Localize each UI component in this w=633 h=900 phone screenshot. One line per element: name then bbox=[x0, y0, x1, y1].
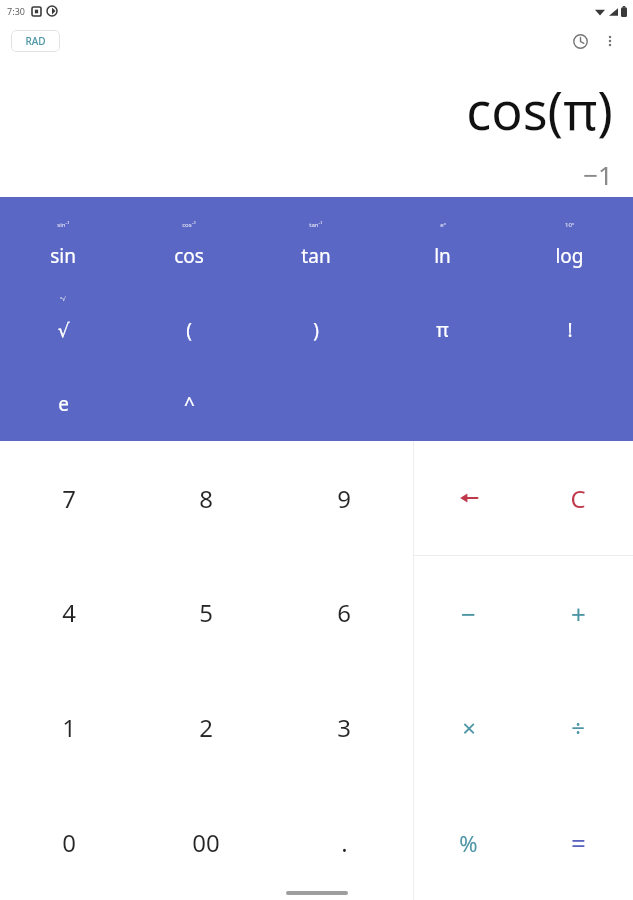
staticText: √ bbox=[57, 319, 70, 341]
button[interactable]: ÷ bbox=[523, 670, 633, 785]
staticText: π bbox=[436, 317, 449, 343]
staticText: 4 bbox=[62, 596, 76, 629]
button[interactable]: % bbox=[414, 785, 523, 900]
button[interactable]: eˣ bbox=[379, 221, 506, 277]
staticText: RAD bbox=[25, 34, 46, 48]
staticText: ( bbox=[186, 317, 192, 343]
staticText: cos(π) bbox=[466, 74, 613, 145]
staticText: 7 bbox=[62, 482, 76, 515]
staticText: tan⁻¹ bbox=[309, 221, 323, 229]
button[interactable]: 3 bbox=[275, 670, 413, 785]
button[interactable]: Backspace bbox=[414, 441, 523, 555]
staticText: 6 bbox=[337, 596, 351, 629]
button[interactable]: 6 bbox=[275, 555, 413, 670]
button[interactable]: + bbox=[523, 556, 633, 670]
staticText: . bbox=[341, 826, 348, 859]
staticText: 1 bbox=[62, 711, 76, 744]
staticText: 10ˣ bbox=[565, 221, 574, 229]
staticText: × bbox=[462, 711, 476, 744]
button[interactable]: 2 bbox=[137, 670, 275, 785]
button[interactable]: 00 bbox=[137, 785, 275, 900]
button[interactable]: sin⁻¹ bbox=[0, 221, 126, 277]
button[interactable]: RAD bbox=[11, 30, 60, 52]
staticText: ) bbox=[313, 317, 319, 343]
staticText: −1 bbox=[583, 157, 613, 192]
staticText: 3 bbox=[337, 711, 351, 744]
button[interactable]: ) bbox=[252, 295, 379, 351]
other: Backspace bbox=[455, 484, 483, 512]
staticText: % bbox=[459, 828, 478, 858]
button[interactable]: = bbox=[523, 785, 633, 900]
button[interactable]: ˣ√ bbox=[0, 295, 126, 351]
button[interactable]: C bbox=[523, 441, 633, 555]
button[interactable]: More options bbox=[595, 26, 625, 56]
staticText: 2 bbox=[199, 711, 213, 744]
staticText: 9 bbox=[337, 482, 351, 515]
staticText: e bbox=[58, 391, 69, 417]
button[interactable]: π bbox=[379, 295, 506, 351]
staticText: cos bbox=[174, 243, 204, 269]
staticText: ^ bbox=[184, 391, 195, 417]
staticText: 5 bbox=[199, 596, 213, 629]
staticText: 8 bbox=[199, 482, 213, 515]
button[interactable]: e bbox=[0, 369, 126, 425]
staticText: tan bbox=[301, 243, 331, 269]
staticText: cos⁻¹ bbox=[182, 221, 196, 229]
staticText: eˣ bbox=[440, 221, 446, 229]
staticText: log bbox=[555, 243, 584, 269]
staticText: sin bbox=[50, 243, 76, 269]
button[interactable]: 4 bbox=[0, 555, 137, 670]
button[interactable]: tan⁻¹ bbox=[252, 221, 379, 277]
staticText: 00 bbox=[192, 826, 220, 859]
button[interactable]: . bbox=[275, 785, 413, 900]
button[interactable]: ! bbox=[506, 295, 633, 351]
staticText: 7:30 bbox=[7, 5, 25, 17]
button[interactable]: cos⁻¹ bbox=[126, 221, 252, 277]
staticText: ÷ bbox=[571, 711, 585, 744]
staticText: + bbox=[571, 596, 586, 631]
staticText: 0 bbox=[62, 826, 76, 859]
button[interactable]: 8 bbox=[137, 441, 275, 555]
button[interactable]: ( bbox=[126, 295, 252, 351]
staticText: ˣ√ bbox=[60, 295, 66, 303]
staticText: C bbox=[570, 482, 586, 515]
staticText: = bbox=[571, 825, 586, 860]
button[interactable]: 10ˣ bbox=[506, 221, 633, 277]
button[interactable]: 5 bbox=[137, 555, 275, 670]
button[interactable]: 7 bbox=[0, 441, 137, 555]
staticText: ln bbox=[434, 243, 451, 269]
staticText: − bbox=[461, 596, 476, 631]
button[interactable]: × bbox=[414, 670, 523, 785]
staticText: ! bbox=[567, 317, 573, 343]
button[interactable]: 0 bbox=[0, 785, 137, 900]
button[interactable]: 9 bbox=[275, 441, 413, 555]
button[interactable]: History bbox=[565, 26, 595, 56]
button[interactable]: − bbox=[414, 556, 523, 670]
button[interactable]: ^ bbox=[126, 369, 252, 425]
button[interactable]: 1 bbox=[0, 670, 137, 785]
staticText: sin⁻¹ bbox=[57, 221, 70, 229]
